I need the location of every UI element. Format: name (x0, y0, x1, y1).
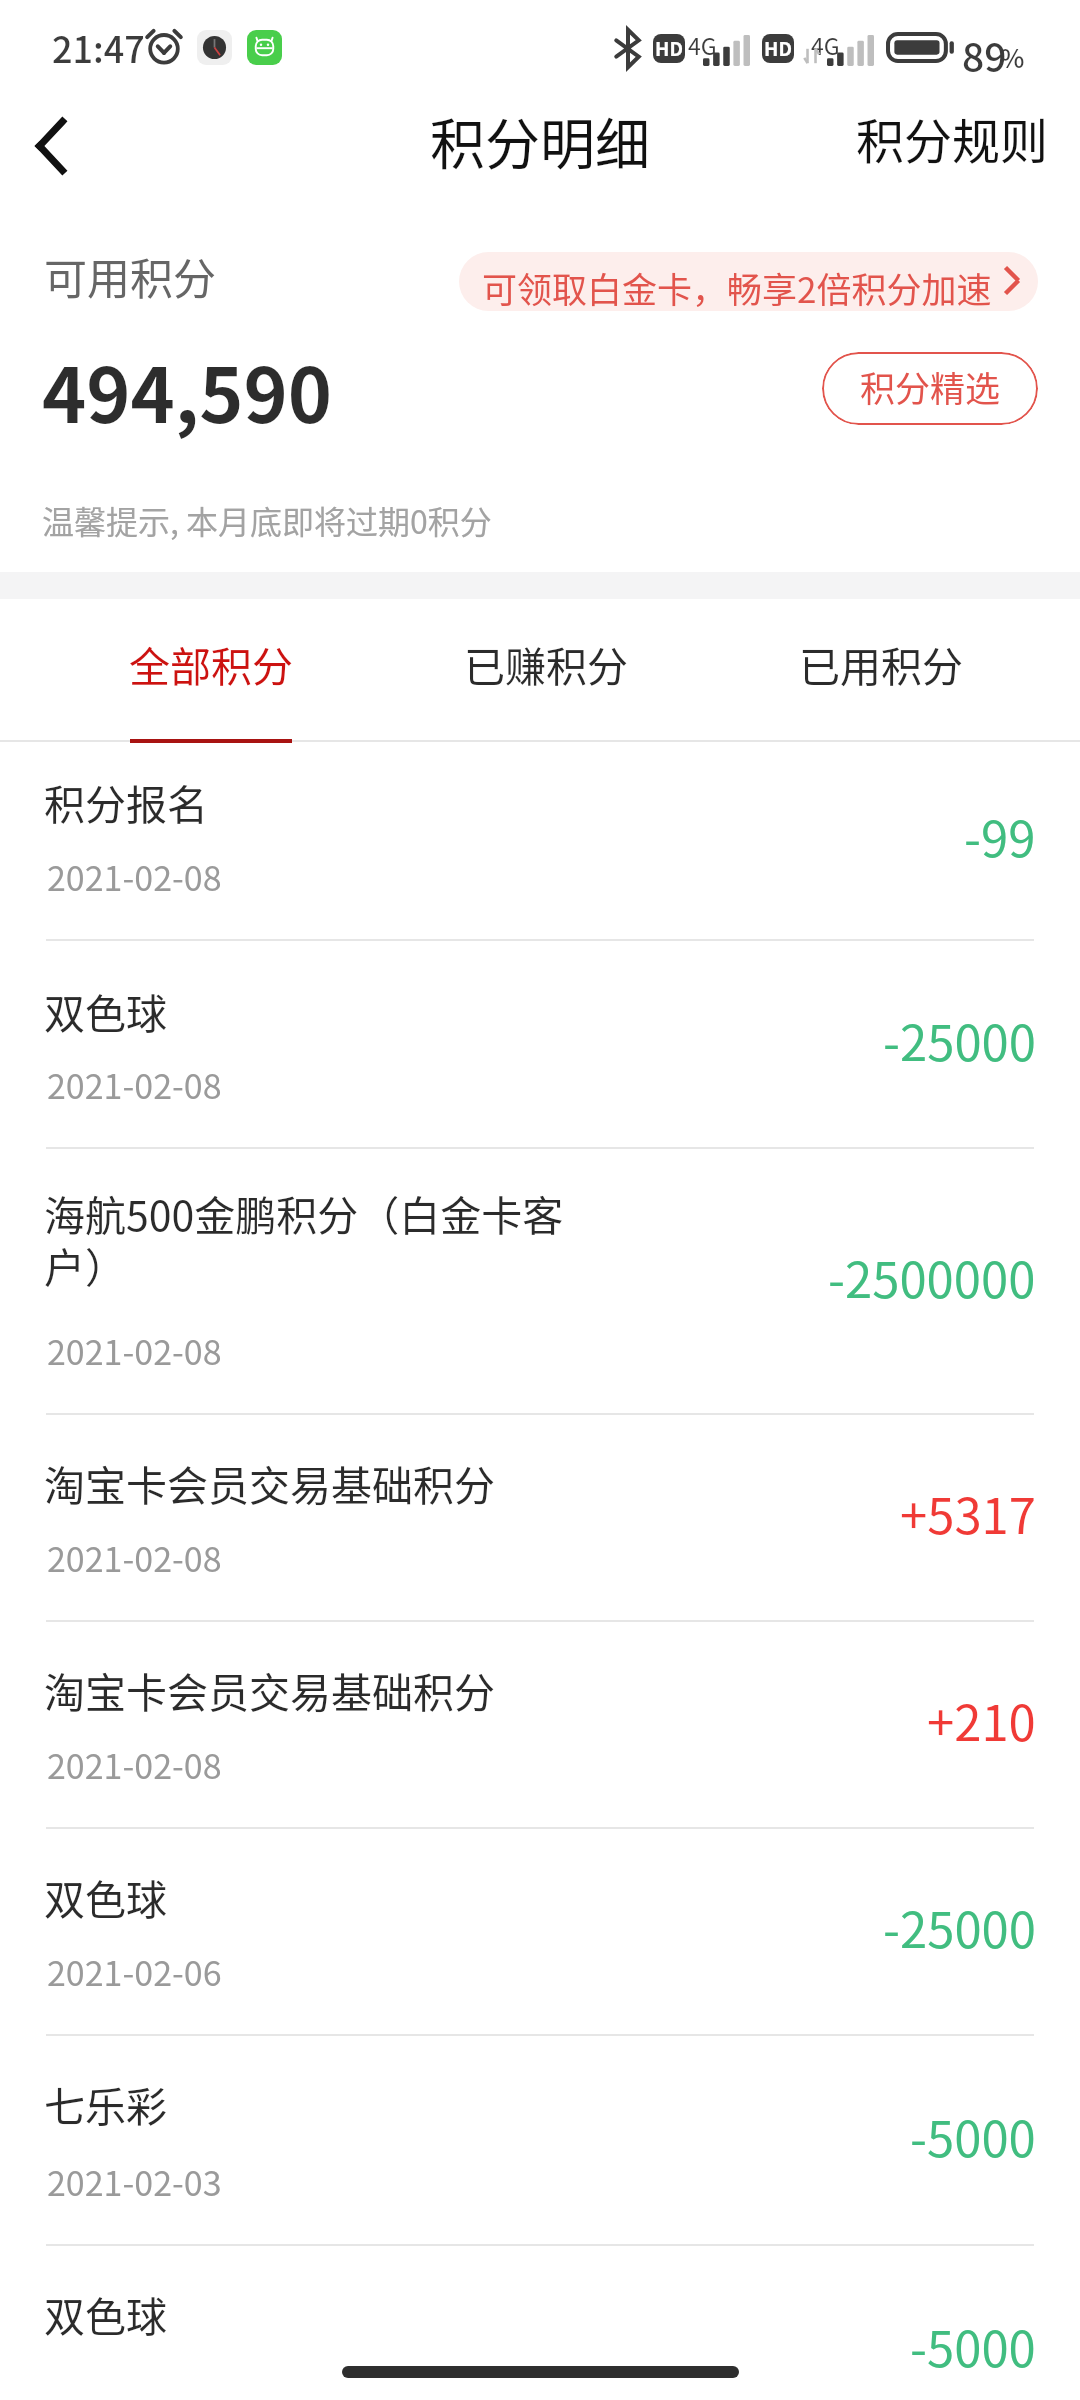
button[interactable]: Back (0, 100, 112, 198)
staticText: 2021-02-06 (47, 1947, 222, 1996)
button[interactable]: 已用积分 (713, 599, 1048, 742)
staticText: 淘宝卡会员交易基础积分 (44, 1660, 584, 1719)
button[interactable]: 双色球 (0, 941, 1080, 1149)
staticText: 温馨提示, 本月底即将过期0积分 (42, 497, 492, 543)
staticText: 海航500金鹏积分（白金卡客户） (44, 1183, 584, 1294)
button[interactable]: 淘宝卡会员交易基础积分 (0, 1622, 1080, 1829)
button[interactable]: 积分报名 (0, 742, 1080, 941)
button[interactable]: 可领取白金卡，畅享2倍积分加速 (459, 252, 1038, 311)
staticText: -2500000 (828, 1241, 1036, 1312)
staticText: 2021-02-08 (47, 852, 222, 901)
button[interactable]: 淘宝卡会员交易基础积分 (0, 1415, 1080, 1622)
staticText: 积分精选 (860, 361, 1001, 412)
staticText: 七乐彩 (44, 2074, 584, 2133)
staticText: 2021-02-08 (47, 1060, 222, 1109)
button[interactable]: 七乐彩 (0, 2036, 1080, 2246)
staticText: 积分规则 (856, 103, 1049, 173)
staticText: 89 (962, 27, 1007, 83)
staticText: HD (655, 34, 683, 62)
staticText: HD (764, 34, 792, 62)
staticText: -5000 (910, 2310, 1036, 2381)
staticText: 淘宝卡会员交易基础积分 (44, 1453, 584, 1512)
staticText: 494,590 (42, 336, 332, 445)
staticText: 积分明细 (430, 100, 651, 180)
staticText: 双色球 (44, 1867, 584, 1926)
staticText: 积分报名 (44, 772, 584, 831)
staticText: 4G (688, 28, 717, 61)
staticText: +5317 (900, 1477, 1036, 1548)
button[interactable]: 海航500金鹏积分（白金卡客户） (0, 1149, 1080, 1415)
staticText: 已赚积分 (464, 634, 628, 693)
staticText: 可领取白金卡，畅享2倍积分加速 (482, 262, 992, 311)
button[interactable]: 积分规则 (856, 100, 1080, 198)
staticText: -25000 (883, 1004, 1036, 1075)
button[interactable]: 全部积分 (43, 599, 378, 742)
button[interactable]: 已赚积分 (378, 599, 713, 742)
button[interactable]: 双色球 (0, 1829, 1080, 2036)
staticText: 2021-02-03 (47, 2157, 222, 2206)
staticText: 可用积分 (44, 245, 216, 307)
staticText: 已用积分 (799, 634, 963, 693)
staticText: % (1000, 38, 1025, 76)
staticText: 双色球 (44, 981, 584, 1040)
staticText: 2021-02-08 (47, 1326, 222, 1375)
button[interactable]: 双色球 (0, 2246, 1080, 2400)
staticText: -99 (964, 800, 1036, 871)
button[interactable]: 积分精选 (822, 352, 1038, 425)
staticText: -5000 (910, 2100, 1036, 2171)
staticText: -25000 (883, 1891, 1036, 1962)
staticText: 4G (811, 28, 840, 61)
staticText: 全部积分 (129, 634, 293, 693)
staticText: 2021-02-08 (47, 1533, 222, 1582)
staticText: +210 (927, 1684, 1036, 1755)
staticText: 21:47 (52, 21, 145, 73)
staticText: 2021-02-08 (47, 1740, 222, 1789)
staticText: 双色球 (44, 2284, 584, 2343)
